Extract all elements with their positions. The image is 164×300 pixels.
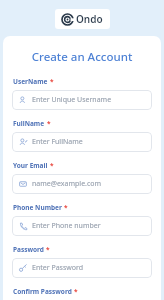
staticText: * <box>50 161 54 170</box>
staticText: name@example.com <box>32 179 102 189</box>
button[interactable]: Enter Unique Username <box>12 90 152 110</box>
staticText: * <box>47 119 51 128</box>
button[interactable]: Enter FullName <box>12 132 152 152</box>
staticText: UserName <box>13 77 48 86</box>
button[interactable]: Enter Password <box>12 258 152 278</box>
button[interactable]: name@example.com <box>12 174 152 194</box>
staticText: Password <box>13 245 44 254</box>
staticText: Enter Phone number <box>32 221 101 231</box>
other: Ondo logo <box>62 14 73 25</box>
button[interactable]: Ondo logo <box>55 9 110 29</box>
staticText: * <box>50 77 54 86</box>
staticText: Confirm Password <box>13 287 72 296</box>
staticText: * <box>46 245 50 254</box>
staticText: FullName <box>13 119 45 128</box>
staticText: Enter Unique Username <box>32 95 112 105</box>
staticText: Enter Password <box>32 263 84 273</box>
staticText: Enter FullName <box>32 137 83 147</box>
staticText: * <box>74 287 78 296</box>
button[interactable]: Enter Phone number <box>12 216 152 236</box>
staticText: Create an Account <box>3 49 161 65</box>
staticText: Ondo <box>76 12 103 26</box>
staticText: Your Email <box>13 161 48 170</box>
staticText: * <box>64 203 68 212</box>
staticText: Phone Number <box>13 203 62 212</box>
